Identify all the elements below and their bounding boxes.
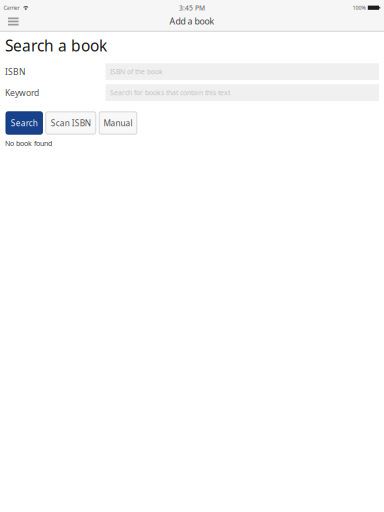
staticText: Manual xyxy=(103,117,132,128)
staticText: ISBN of the book xyxy=(110,67,163,76)
staticText: Carrier xyxy=(4,4,20,11)
staticText: Add a book xyxy=(169,15,214,27)
staticText: No book found xyxy=(5,139,52,148)
button[interactable]: Search xyxy=(6,112,42,134)
button[interactable]: Manual xyxy=(99,112,137,134)
button[interactable]: Scan ISBN xyxy=(46,112,96,134)
staticText: Search xyxy=(11,117,38,128)
staticText: Scan ISBN xyxy=(51,117,91,128)
staticText: Keyword xyxy=(5,87,39,98)
button[interactable]: Menu xyxy=(0,13,28,27)
staticText: ISBN xyxy=(5,66,25,77)
staticText: 100% xyxy=(353,4,366,11)
staticText: Search for books that contain this text xyxy=(110,88,230,97)
staticText: 3:45 PM xyxy=(179,3,205,12)
staticText: Search a book xyxy=(5,35,107,56)
